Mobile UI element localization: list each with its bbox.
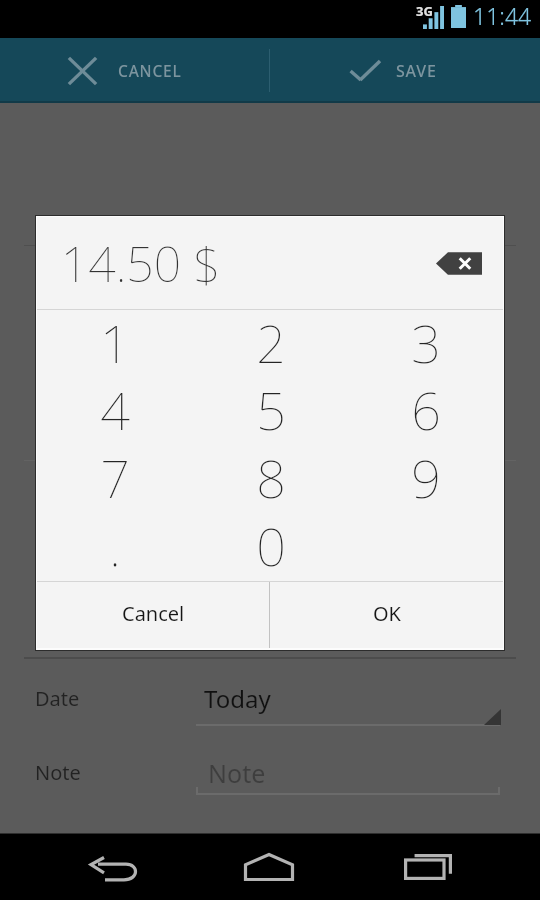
button[interactable]: 1	[37, 307, 193, 374]
staticText: Note	[208, 756, 266, 790]
staticText: OK	[373, 600, 401, 627]
staticText: 6	[411, 374, 441, 442]
staticText: 1	[100, 307, 130, 374]
staticText: 7	[100, 442, 130, 510]
button[interactable]: 3	[348, 307, 503, 374]
staticText: 8	[256, 442, 286, 510]
staticText: 5	[256, 374, 286, 442]
staticText: Date	[35, 685, 80, 712]
staticText: 9	[411, 442, 441, 510]
staticText: 3	[411, 307, 441, 374]
button[interactable]: 6	[348, 374, 503, 442]
button[interactable]: 8	[193, 442, 348, 510]
button[interactable]: 2	[193, 307, 348, 374]
staticText: .	[109, 510, 121, 578]
staticText: 3G	[416, 2, 433, 20]
staticText: 0	[256, 510, 286, 578]
staticText: 2	[256, 307, 286, 374]
button[interactable]: OK	[270, 582, 503, 648]
staticText: SAVE	[396, 60, 437, 82]
button[interactable]: 7	[37, 442, 193, 510]
staticText: CANCEL	[118, 60, 182, 81]
staticText: 11:44	[473, 0, 532, 31]
button[interactable]: CANCEL	[0, 38, 269, 103]
button[interactable]: 5	[193, 374, 348, 442]
button[interactable]: 9	[348, 442, 503, 510]
staticText: Today	[204, 682, 271, 715]
button[interactable]: Recents	[392, 833, 464, 900]
button[interactable]: 4	[37, 374, 193, 442]
button[interactable]: .	[37, 510, 193, 578]
button[interactable]: Cancel	[37, 582, 269, 648]
button[interactable]: Backspace	[436, 248, 482, 279]
button[interactable]: Back	[76, 833, 148, 900]
staticText: Cancel	[122, 600, 185, 627]
button[interactable]: SAVE	[270, 38, 540, 103]
staticText: Note	[35, 759, 81, 786]
staticText: 4	[100, 374, 130, 442]
staticText: 14.50 $	[61, 231, 221, 296]
button[interactable]: Home	[233, 833, 305, 900]
button[interactable]: 0	[193, 510, 348, 578]
